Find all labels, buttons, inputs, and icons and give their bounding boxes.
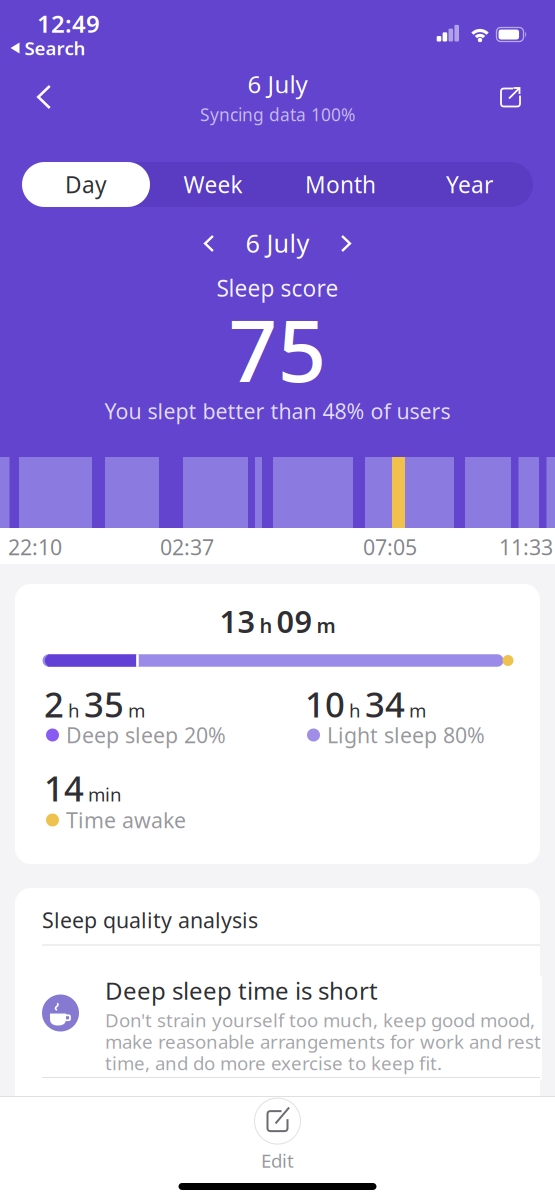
staticText: 09 [276,601,312,641]
staticText: 6 July [245,226,309,260]
staticText: h [349,698,361,723]
staticText: Sleep score [216,273,338,303]
staticText: Deep sleep time is short [105,975,378,1006]
staticText: 02:37 [160,533,214,561]
staticText: h [259,612,272,638]
button[interactable] [194,228,224,258]
button[interactable]: Month [285,162,395,207]
button[interactable]: Week [158,162,268,207]
staticText: 07:05 [363,533,417,561]
staticText: m [128,698,145,723]
staticText: 2 [44,681,64,727]
staticText: 35 [84,681,124,727]
staticText: Year [446,169,493,199]
staticText: time, and do more exercise to keep fit. [105,1051,442,1075]
staticText: Day [65,169,107,199]
staticText: Time awake [66,806,186,834]
staticText: min [88,782,122,807]
staticText: 75 [228,292,326,406]
staticText: 13 [219,601,255,641]
staticText: 6 July [247,68,307,100]
staticText: 22:10 [8,533,62,561]
button[interactable] [491,77,531,117]
staticText: 11:33 [499,533,553,561]
staticText: 34 [365,681,405,727]
staticText: h [68,698,80,723]
staticText: Search [24,36,85,60]
button[interactable] [331,228,361,258]
button[interactable]: Day [22,162,150,207]
staticText: Sleep quality analysis [42,906,258,934]
staticText: Deep sleep 20% [66,721,226,749]
button[interactable]: Deep sleep time is short [42,976,542,1080]
staticText: m [316,612,335,638]
staticText: make reasonable arrangements for work an… [105,1029,541,1054]
staticText: Don't strain yourself too much, keep goo… [105,1008,535,1032]
staticText: m [409,698,426,723]
staticText: Week [183,169,242,199]
button[interactable]: Edit [254,1098,300,1173]
staticText: You slept better than 48% of users [104,397,450,425]
button[interactable]: Search [10,36,85,60]
staticText: Edit [261,1148,294,1173]
button[interactable] [24,77,64,117]
staticText: 10 [305,681,345,727]
staticText: 14 [44,765,84,811]
staticText: Light sleep 80% [327,721,485,749]
staticText: 12:49 [37,8,100,39]
staticText: Month [305,169,376,199]
button[interactable]: Year [414,162,524,207]
staticText: Syncing data 100% [200,103,355,126]
